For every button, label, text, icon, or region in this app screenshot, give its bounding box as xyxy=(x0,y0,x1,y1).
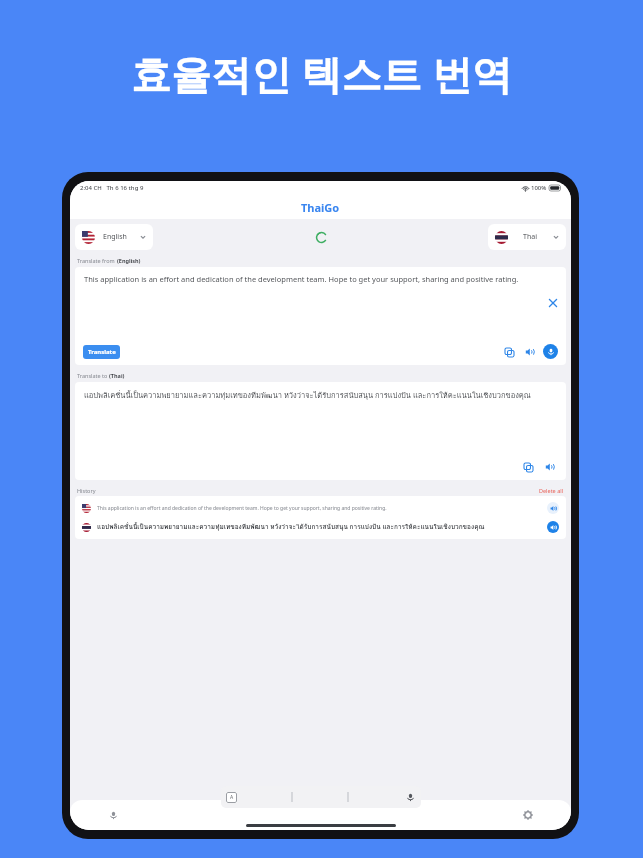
staticText: 100% xyxy=(531,184,547,192)
staticText: This application is an effort and dedica… xyxy=(97,505,542,512)
button[interactable]: Speak xyxy=(523,345,537,359)
staticText: This application is an effort and dedica… xyxy=(84,274,519,284)
button[interactable]: Play Thai xyxy=(547,521,559,533)
button[interactable]: Thai xyxy=(488,224,566,250)
staticText: แอปพลิเคชั่นนี้เป็นความพยายามและความทุ่ม… xyxy=(97,522,542,532)
staticText: Delete all xyxy=(539,487,564,494)
button[interactable]: Delete all xyxy=(539,487,564,494)
button[interactable]: Speak translation xyxy=(543,460,557,474)
staticText: English xyxy=(103,232,127,242)
staticText: Thai xyxy=(523,232,537,242)
button[interactable]: Dictate xyxy=(404,791,416,803)
button[interactable]: Settings xyxy=(519,806,537,824)
button[interactable]: Copy translation xyxy=(521,460,535,474)
staticText: ThaiGo xyxy=(301,200,340,215)
button[interactable]: Copy xyxy=(502,345,516,359)
staticText: แอปพลิเคชั่นนี้เป็นความพยายามและความทุ่ม… xyxy=(84,389,531,401)
staticText: History xyxy=(77,487,96,494)
button[interactable]: Translate xyxy=(83,345,120,359)
staticText: 효율적인 텍스트 번역 xyxy=(131,46,512,101)
staticText: (English) xyxy=(117,257,141,264)
staticText: A xyxy=(230,794,234,801)
button[interactable]: แอปพลิเคชั่นนี้เป็นความพยายามและความทุ่ม… xyxy=(75,519,566,535)
button[interactable]: Clear text xyxy=(547,297,559,309)
staticText: Translate xyxy=(88,348,116,356)
button[interactable]: English xyxy=(75,224,153,250)
button[interactable]: Voice input xyxy=(543,344,558,359)
button[interactable]: Play English xyxy=(547,502,559,514)
button[interactable]: This application is an effort and dedica… xyxy=(75,500,566,516)
staticText: Translate from xyxy=(77,257,117,264)
staticText: Translate to xyxy=(77,372,109,379)
staticText: (Thai) xyxy=(109,372,125,379)
button[interactable]: Voice xyxy=(104,806,122,824)
button[interactable]: Swap languages xyxy=(311,227,331,247)
button[interactable]: Keyboard layout xyxy=(226,792,237,803)
staticText: 2:04 CH Th 6 16 thg 9 xyxy=(80,184,144,192)
